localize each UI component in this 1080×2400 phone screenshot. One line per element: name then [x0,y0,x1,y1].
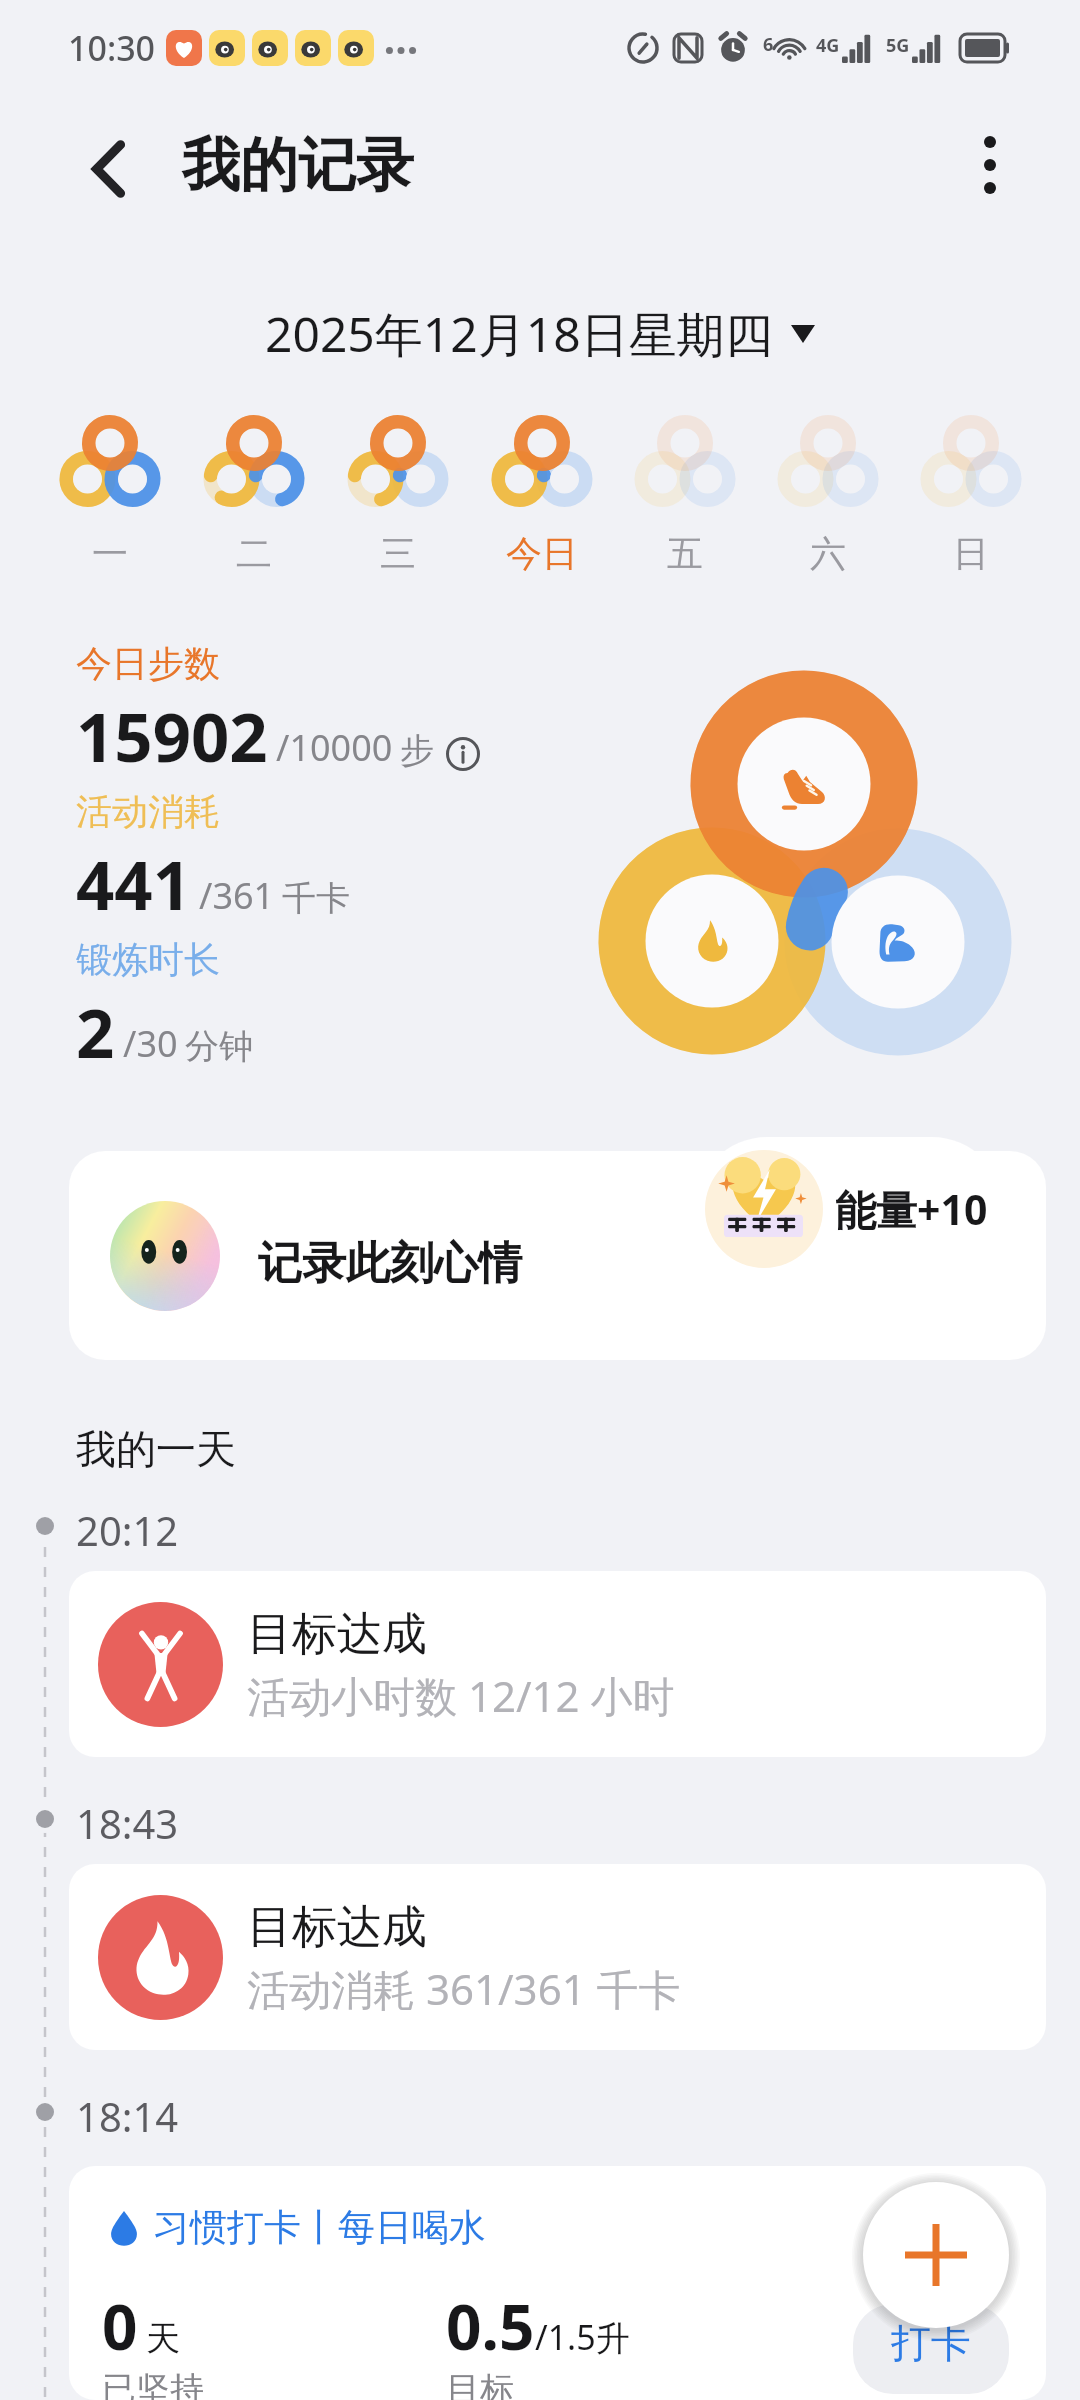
staticText: /30 [123,1019,178,1068]
staticText: 日 [953,531,989,576]
staticText: /1.5升 [535,2314,630,2360]
staticText: 二 [236,531,272,576]
staticText: 步 [400,729,434,772]
staticText: 20:12 [76,1503,179,1549]
staticText: 我的记录 [182,129,414,202]
staticText: 目标达成 [247,1606,427,1663]
button[interactable]: 目标达成 [69,1864,1046,2050]
staticText: 441 [76,838,191,929]
staticText: 4G [816,33,840,58]
button[interactable]: 目标达成 [69,1571,1046,1757]
staticText: 天 [146,2317,180,2360]
button[interactable]: 三 [326,409,470,576]
staticText: 今日步数 [76,641,220,686]
button[interactable]: 一 [38,409,182,576]
staticText: 18:43 [76,1796,179,1842]
staticText: 2025年12月18日星期四 [265,301,773,367]
staticText: 活动消耗 361/361 千卡 [247,1960,681,2017]
button[interactable]: 2025年12月18日星期四 [265,301,815,367]
button[interactable]: Back [62,125,154,213]
button[interactable]: 六 [756,409,899,576]
staticText: 活动小时数 12/12 小时 [247,1667,675,1724]
button[interactable]: 二 [182,409,326,576]
button[interactable]: More options [955,130,1025,200]
staticText: 今日 [506,531,578,576]
staticText: 5G [886,33,910,58]
button[interactable]: 日 [899,409,1042,576]
staticText: 18:14 [76,2089,179,2135]
staticText: 一 [92,531,128,576]
staticText: /10000 [276,723,393,772]
staticText: /361 [199,871,275,920]
staticText: 10:30 [68,25,156,71]
staticText: 0.5 [446,2284,535,2368]
staticText: 锻炼时长 [76,937,220,982]
button[interactable]: 能量+10 [695,1137,1004,1281]
staticText: 0 [102,2284,138,2368]
button[interactable]: 打卡 [853,2304,1009,2394]
button[interactable]: 记录此刻心情 [69,1151,1046,1360]
staticText: 能量+10 [835,1181,988,1237]
staticText: 五 [667,531,703,576]
button[interactable]: 五 [613,409,756,576]
staticText: 习惯打卡丨每日喝水 [153,2204,486,2251]
button[interactable]: Add water [863,2182,1009,2328]
staticText: 记录此刻心情 [258,1236,522,1291]
staticText: 三 [380,531,416,576]
staticText: 2 [76,986,115,1077]
staticText: 打卡 [891,2318,971,2368]
staticText: 我的一天 [76,1424,236,1474]
staticText: 千卡 [282,877,350,920]
staticText: 6 [763,32,774,57]
staticText: 分钟 [185,1025,253,1068]
staticText: 目标 [446,2368,514,2400]
button[interactable]: 习惯打卡丨每日喝水 [69,2166,1046,2400]
staticText: 已坚持 [102,2368,204,2400]
staticText: 六 [810,531,846,576]
button[interactable]: 今日 [470,409,613,576]
staticText: 活动消耗 [76,789,220,834]
staticText: 15902 [76,690,268,781]
staticText: 目标达成 [247,1899,427,1956]
